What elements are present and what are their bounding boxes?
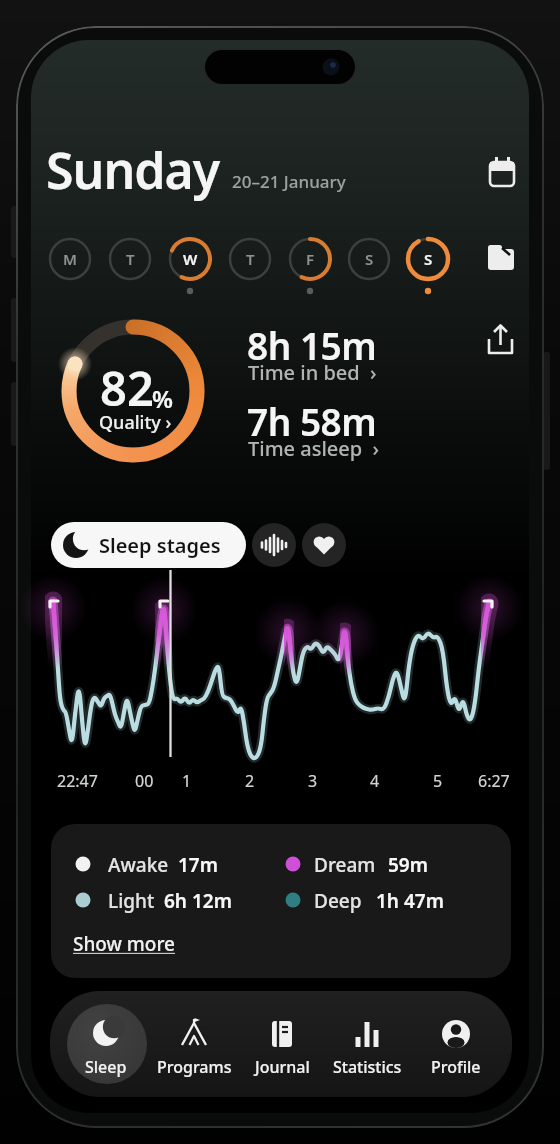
button[interactable]: Statistics <box>325 998 409 1090</box>
staticText: 17m <box>178 852 218 878</box>
button[interactable]: Sleep <box>64 998 148 1090</box>
staticText: Time asleep › <box>248 435 380 462</box>
staticText: Statistics <box>333 1056 402 1078</box>
button[interactable]: W <box>166 235 214 297</box>
staticText: M <box>63 249 77 269</box>
staticText: 7h 58m <box>247 396 377 446</box>
staticText: 8h 15m <box>247 320 377 370</box>
staticText: Dream <box>314 852 376 878</box>
button[interactable]: T <box>226 235 274 297</box>
staticText: Awake <box>108 852 169 878</box>
button[interactable]: M <box>46 235 94 297</box>
staticText: Profile <box>431 1056 481 1078</box>
staticText: Deep <box>314 888 362 914</box>
button[interactable] <box>482 240 520 278</box>
staticText: 1h 47m <box>376 888 444 914</box>
staticText: F <box>306 249 315 269</box>
staticText: 4 <box>370 770 380 792</box>
staticText: Sleep <box>85 1056 127 1078</box>
staticText: W <box>183 249 198 269</box>
staticText: S <box>424 249 433 269</box>
button[interactable]: Show more <box>73 931 176 957</box>
button[interactable] <box>484 152 520 192</box>
button[interactable]: Programs <box>152 998 236 1090</box>
button[interactable]: S <box>404 235 452 297</box>
staticText: 22:47 <box>57 770 98 792</box>
staticText: 6:27 <box>478 770 510 792</box>
staticText: Programs <box>157 1056 232 1078</box>
staticText: 00 <box>135 770 154 792</box>
button[interactable] <box>302 523 346 567</box>
staticText: 20–21 January <box>232 170 346 193</box>
button[interactable] <box>247 316 427 380</box>
staticText: T <box>126 249 135 269</box>
button[interactable] <box>61 319 205 463</box>
staticText: Light <box>108 888 155 914</box>
staticText: Journal <box>255 1056 310 1078</box>
button[interactable]: S <box>345 235 393 297</box>
staticText: Time in bed › <box>248 359 377 386</box>
button[interactable] <box>247 392 427 456</box>
staticText: Sunday <box>46 136 220 204</box>
staticText: Sleep stages <box>99 532 221 559</box>
button[interactable]: T <box>106 235 154 297</box>
staticText: T <box>246 249 255 269</box>
button[interactable]: Journal <box>240 998 324 1090</box>
button[interactable]: Profile <box>414 998 498 1090</box>
staticText: 2 <box>245 770 255 792</box>
button[interactable]: Sleep stages <box>51 522 246 568</box>
button[interactable] <box>252 523 296 567</box>
staticText: S <box>365 249 374 269</box>
button[interactable] <box>482 320 520 358</box>
staticText: 82 <box>100 356 154 420</box>
staticText: Quality › <box>99 410 172 435</box>
staticText: 3 <box>308 770 318 792</box>
button[interactable]: F <box>286 235 334 297</box>
staticText: % <box>152 382 173 415</box>
staticText: 1 <box>182 770 192 792</box>
staticText: 6h 12m <box>164 888 232 914</box>
staticText: 5 <box>433 770 443 792</box>
staticText: Show more <box>73 931 176 957</box>
staticText: 59m <box>388 852 428 878</box>
